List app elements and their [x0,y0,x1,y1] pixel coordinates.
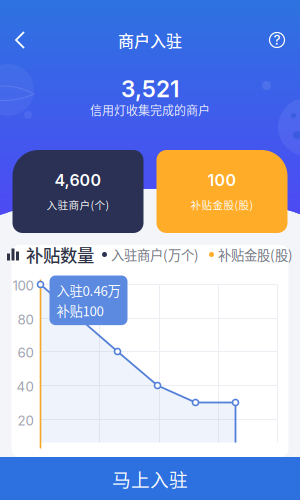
staticText: 信用灯收集完成的商户 [90,101,210,119]
staticText: 补贴数量 [26,242,94,267]
staticText: 100 [12,277,33,294]
staticText: 补贴金股(股) [190,197,253,212]
staticText: ? [273,32,280,48]
staticText: 补贴金股(股) [218,245,293,264]
staticText: 商户入驻 [118,28,182,52]
staticText: 入驻0.46万 [56,280,120,300]
staticText: 3,521 [121,75,179,103]
staticText: 20 [17,412,33,429]
staticText: 马上入驻 [112,465,188,492]
staticText: 补贴100 [56,301,103,320]
staticText: 40 [16,378,33,395]
staticText: 60 [17,344,33,361]
button[interactable]: Help [259,22,295,58]
staticText: 100 [207,171,236,190]
button[interactable]: 马上入驻 [0,457,300,500]
button[interactable]: Back [5,22,41,58]
staticText: 入驻商户(个) [46,197,109,212]
staticText: 4,600 [54,171,101,190]
staticText: 80 [17,311,33,328]
staticText: 入驻商户(万个) [111,245,199,264]
